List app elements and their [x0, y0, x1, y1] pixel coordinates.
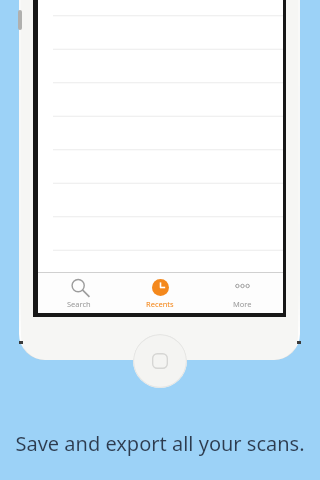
staticText: Save and export all your scans.: [15, 430, 305, 457]
button[interactable]: Recents: [119, 272, 201, 313]
staticText: Search: [67, 299, 91, 309]
button[interactable]: Home: [133, 334, 187, 388]
staticText: More: [233, 299, 252, 309]
staticText: Recents: [146, 299, 174, 309]
button[interactable]: Search: [38, 272, 119, 313]
button[interactable]: More: [201, 272, 283, 313]
